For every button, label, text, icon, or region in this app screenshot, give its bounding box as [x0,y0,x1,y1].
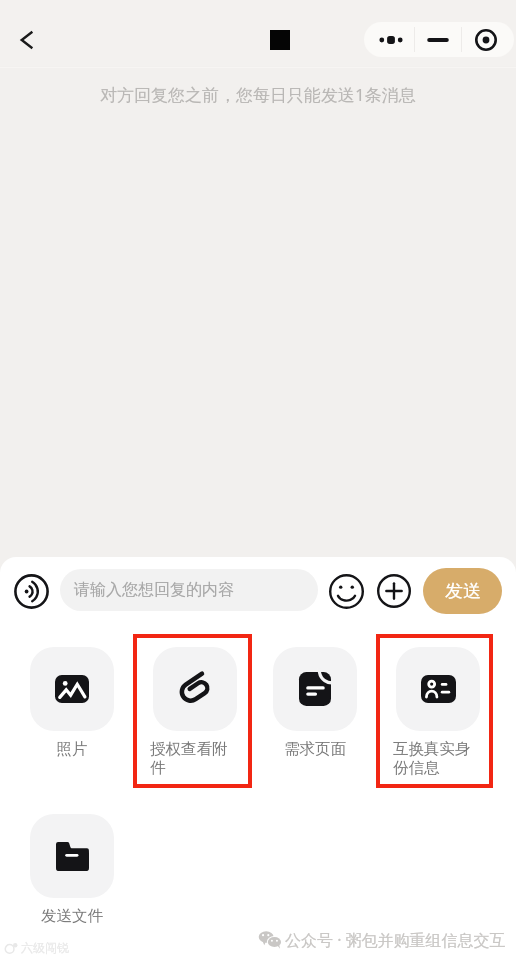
button[interactable]: Emoji [324,569,368,613]
staticText: 需求页面 [273,739,357,759]
button[interactable]: 发送 [423,568,502,614]
staticText: 公众号 · 粥包并购重组信息交互 [285,929,506,951]
staticText: 发送 [445,580,481,603]
staticText: 发送文件 [30,906,114,926]
button[interactable]: 发送文件 [30,814,114,926]
button[interactable]: More [368,22,414,57]
staticText: 授权查看附件 [150,739,234,778]
staticText: 互换真实身份信息 [393,739,477,778]
staticText: 请输入您想回复的内容 [74,580,234,600]
button[interactable]: 请输入您想回复的内容 [60,569,318,611]
staticText: 对方回复您之前，您每日只能发送1条消息 [100,83,416,106]
button[interactable]: 照片 [30,647,114,759]
button[interactable]: 互换真实身份信息 [396,647,480,778]
staticText: 照片 [30,739,114,759]
button[interactable]: Minimize [415,22,461,57]
button[interactable]: Back [6,19,48,61]
button[interactable]: 授权查看附件 [153,647,237,778]
button[interactable]: Close [462,22,510,57]
button[interactable]: Voice input [9,569,53,613]
button[interactable]: 需求页面 [273,647,357,759]
button[interactable]: More options [372,569,416,613]
staticText: 六级闯锐 [21,940,69,955]
